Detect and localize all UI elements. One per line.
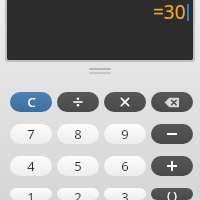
button[interactable]: Minus <box>151 124 193 144</box>
staticText: 4 <box>27 157 35 175</box>
staticText: ( ) <box>167 188 177 200</box>
staticText: 7 <box>27 125 35 143</box>
button[interactable]: C <box>10 92 52 112</box>
staticText: 9 <box>121 125 129 143</box>
button[interactable]: 4 <box>10 156 52 176</box>
button[interactable] <box>104 92 146 112</box>
button[interactable]: 1 <box>10 188 52 200</box>
staticText: 2 <box>74 188 82 200</box>
staticText: =30 <box>153 0 186 25</box>
button[interactable]: ( ) <box>151 188 193 200</box>
button[interactable]: 9 <box>104 124 146 144</box>
button[interactable]: Plus <box>151 156 193 176</box>
staticText: C <box>27 93 36 111</box>
button[interactable]: 6 <box>104 156 146 176</box>
staticText: 3 <box>121 188 129 200</box>
staticText: 6 <box>121 157 129 175</box>
button[interactable]: 7 <box>10 124 52 144</box>
staticText: 5 <box>74 157 82 175</box>
staticText: 8 <box>74 125 82 143</box>
button[interactable] <box>57 92 99 112</box>
button[interactable]: 3 <box>104 188 146 200</box>
button[interactable]: 5 <box>57 156 99 176</box>
staticText: 1 <box>27 188 35 200</box>
button[interactable]: 2 <box>57 188 99 200</box>
button[interactable]: Backspace <box>151 92 193 112</box>
button[interactable]: Resize display <box>77 66 123 76</box>
button[interactable]: =30 <box>7 0 193 60</box>
button[interactable]: 8 <box>57 124 99 144</box>
